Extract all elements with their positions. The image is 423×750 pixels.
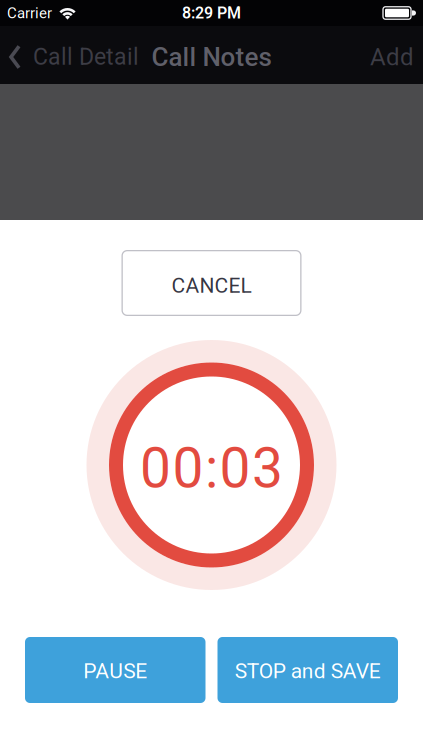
button[interactable]: STOP and SAVE — [217, 637, 398, 703]
staticText: Call Notes — [151, 42, 271, 72]
staticText: Add — [370, 43, 414, 71]
button[interactable]: Call Detail — [0, 41, 139, 68]
button[interactable]: CANCEL — [121, 250, 301, 316]
button[interactable]: PAUSE — [25, 637, 205, 703]
button[interactable]: Add — [370, 41, 423, 69]
staticText: PAUSE — [83, 659, 147, 683]
staticText: 00:03 — [140, 436, 283, 501]
staticText: STOP and SAVE — [235, 659, 381, 683]
staticText: CANCEL — [171, 273, 251, 298]
staticText: 8:29 PM — [182, 4, 241, 22]
staticText: Carrier — [7, 4, 52, 22]
staticText: Call Detail — [33, 43, 139, 70]
